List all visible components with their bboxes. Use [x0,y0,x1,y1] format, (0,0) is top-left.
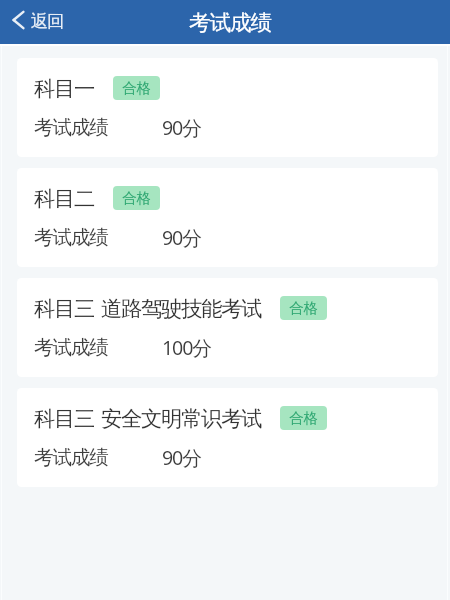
staticText: 合格 [289,409,318,427]
staticText: 科目一 [34,75,95,102]
other: Back [12,10,25,30]
staticText: 合格 [122,79,151,97]
button[interactable]: 科目三 [17,278,438,377]
staticText: 90分 [162,224,201,251]
staticText: 安全文明常识考试 [101,405,262,432]
button[interactable]: 科目三 [17,388,438,487]
button[interactable]: 科目二 [17,168,438,267]
staticText: 考试成绩 [34,335,108,360]
staticText: 考试成绩 [189,9,271,36]
staticText: 考试成绩 [34,225,108,250]
staticText: 道路驾驶技能考试 [101,295,262,322]
button[interactable]: 科目一 [17,58,438,157]
button[interactable]: Back [0,6,75,38]
staticText: 科目二 [34,185,95,212]
staticText: 考试成绩 [34,445,108,470]
staticText: 科目三 [34,405,95,432]
staticText: 90分 [162,444,201,471]
staticText: 合格 [122,189,151,207]
staticText: 100分 [162,334,211,361]
staticText: 返回 [31,11,63,33]
staticText: 科目三 [34,295,95,322]
staticText: 考试成绩 [34,115,108,140]
staticText: 90分 [162,114,201,141]
staticText: 合格 [289,299,318,317]
